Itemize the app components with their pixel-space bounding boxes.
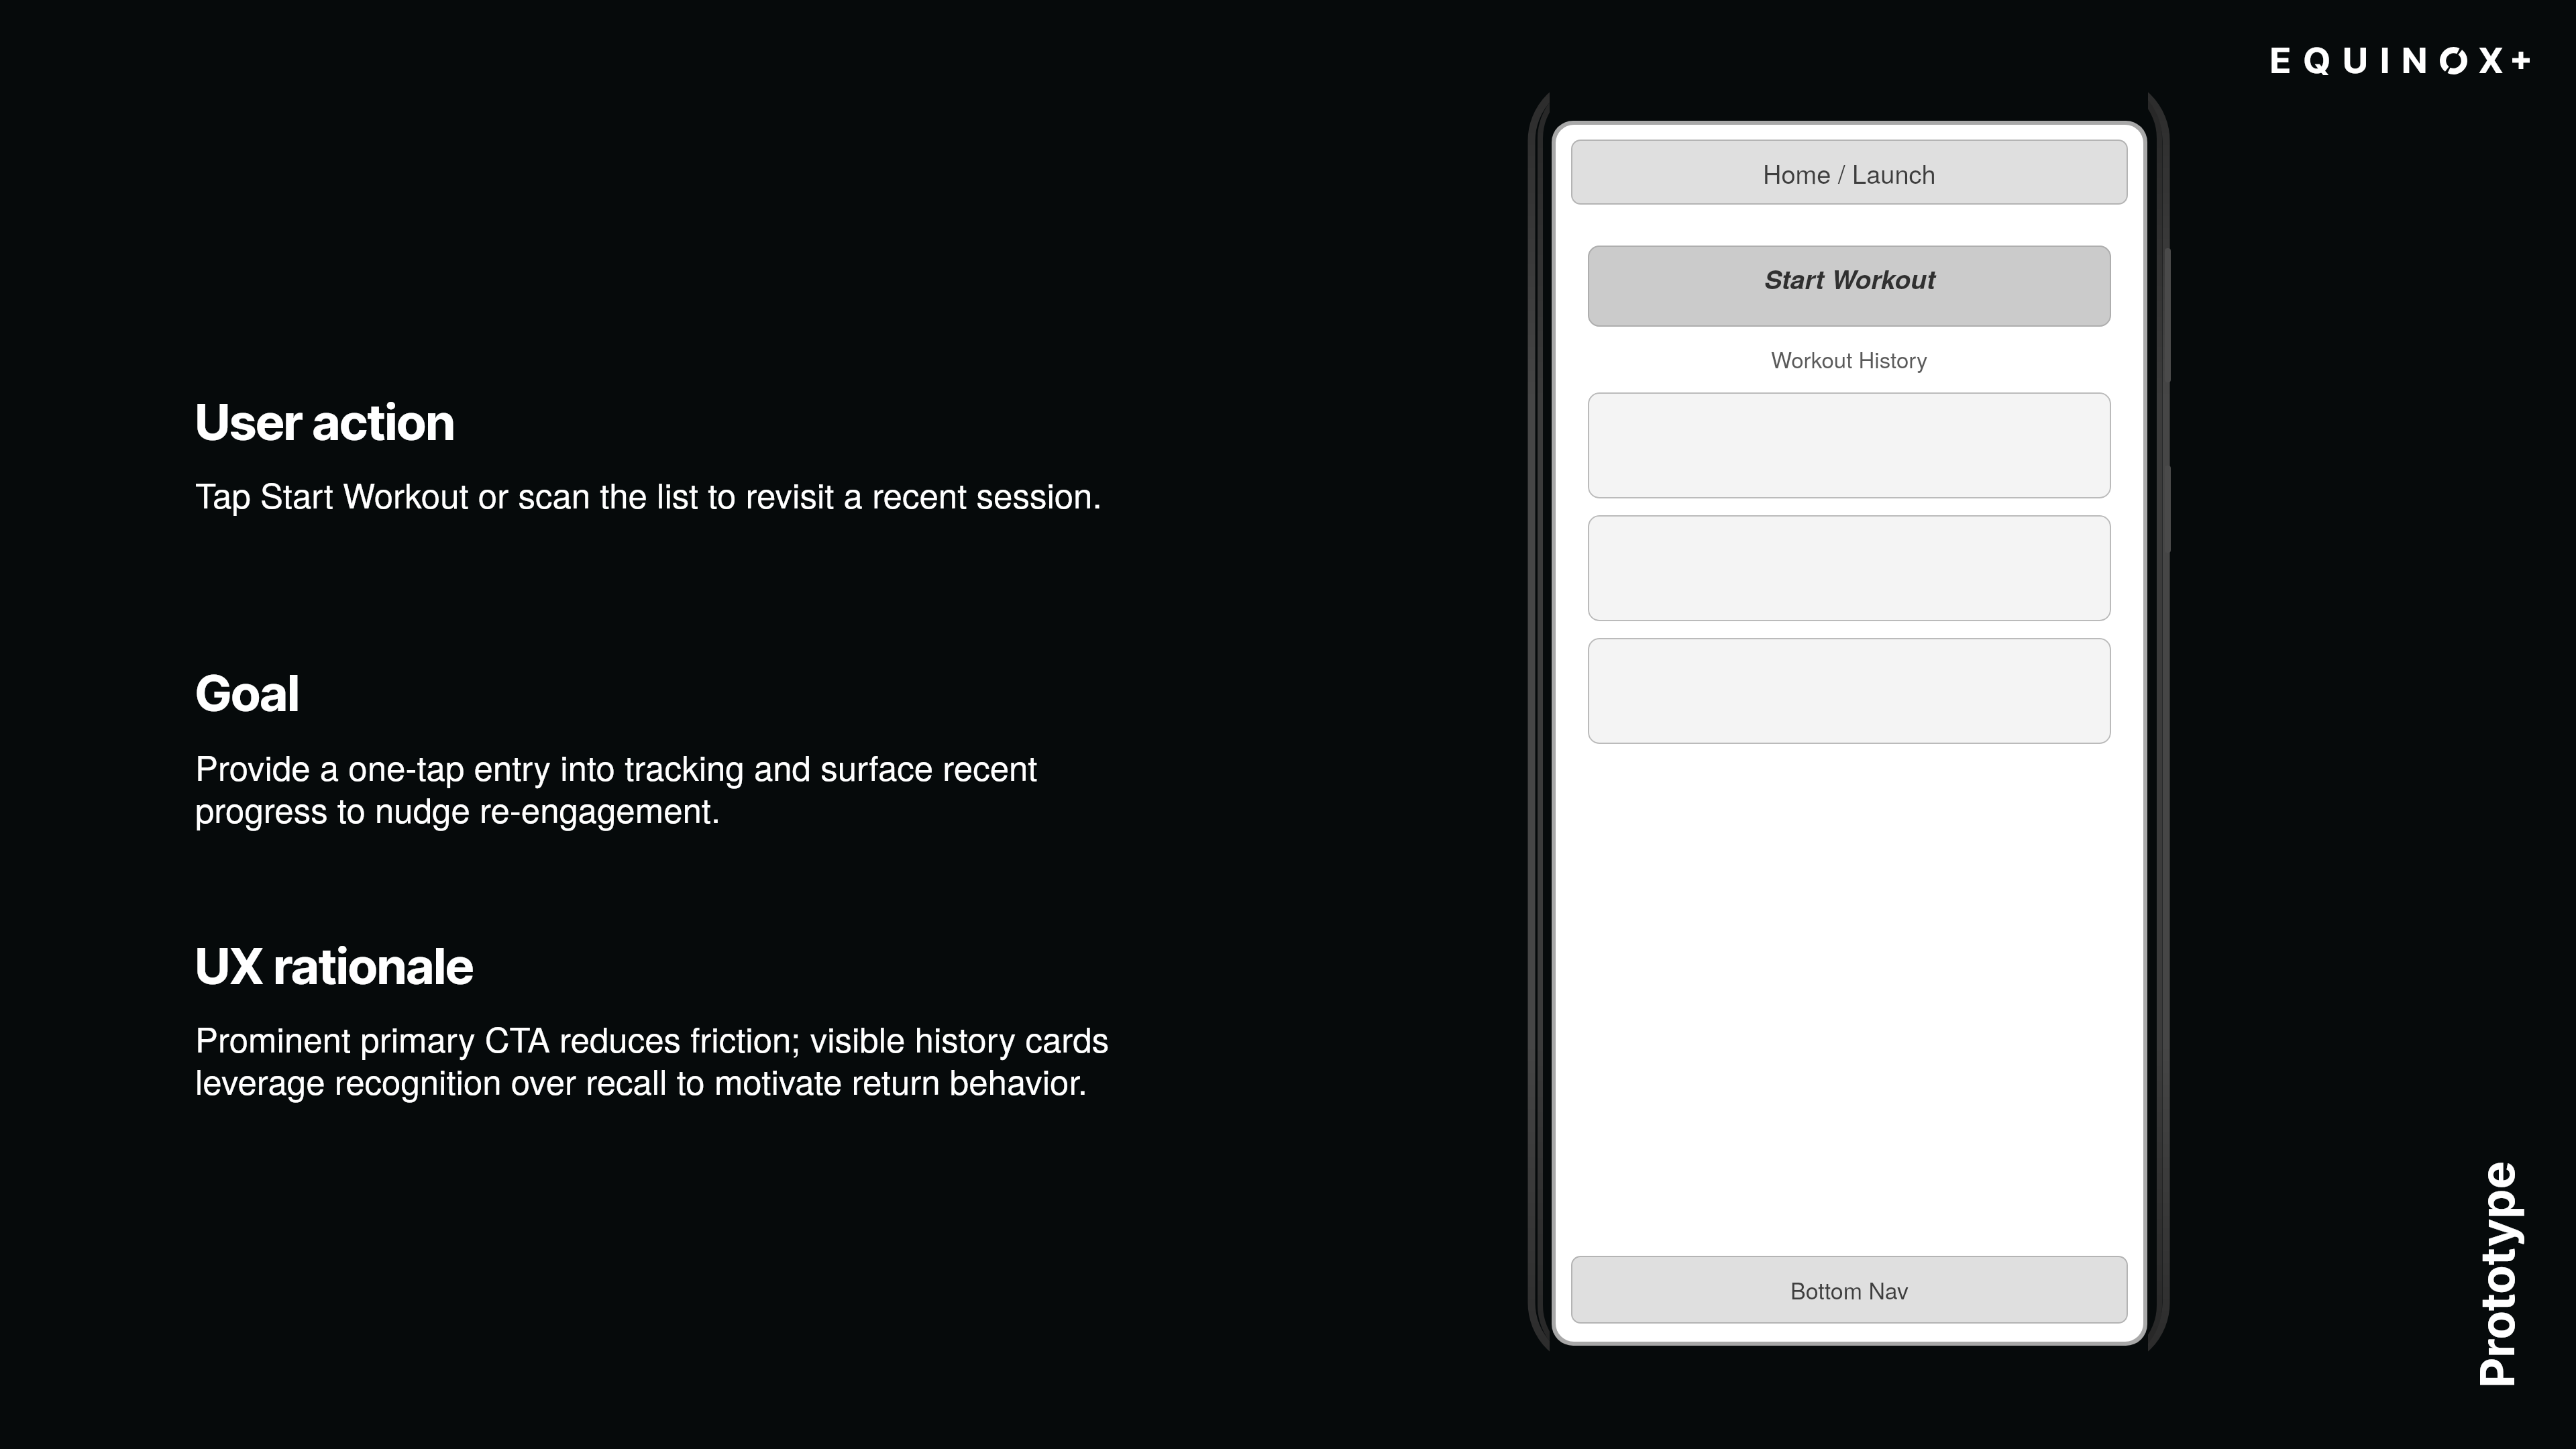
button[interactable]: Workout session 1 xyxy=(1588,392,2111,498)
button[interactable]: Workout session 3 xyxy=(1588,638,2111,744)
staticText: Workout History xyxy=(1771,343,1928,374)
staticText: Start Workout xyxy=(1764,260,1935,297)
staticText: Goal xyxy=(195,663,300,723)
staticText: UX rationale xyxy=(195,936,474,996)
staticText: Prominent primary CTA reduces friction; … xyxy=(195,1013,1110,1104)
staticText: Tap Start Workout or scan the list to re… xyxy=(195,469,1102,518)
staticText: Provide a one-tap entry into tracking an… xyxy=(195,741,1038,833)
button[interactable]: Bottom Nav xyxy=(1571,1256,2128,1324)
button[interactable]: Home / Launch xyxy=(1571,140,2128,205)
staticText: Prototype xyxy=(2469,1161,2526,1388)
button[interactable]: Workout session 2 xyxy=(1588,515,2111,621)
staticText: Home / Launch xyxy=(1763,154,1936,191)
staticText: User action xyxy=(195,392,455,452)
button[interactable]: Start Workout xyxy=(1588,246,2111,327)
staticText: Bottom Nav xyxy=(1790,1273,1909,1306)
staticText: X xyxy=(2479,39,2504,82)
staticText: EQUIN xyxy=(2270,39,2440,82)
